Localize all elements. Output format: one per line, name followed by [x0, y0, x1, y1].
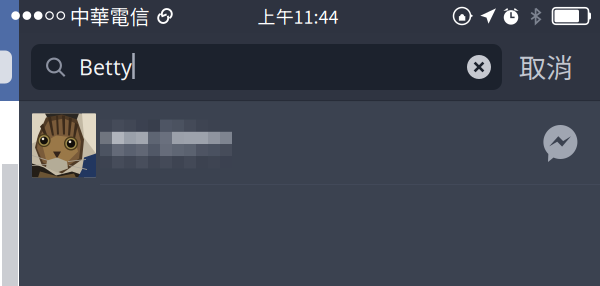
staticText: 上午11:44 — [257, 3, 338, 29]
button[interactable]: 取消 — [508, 43, 584, 89]
button[interactable]: Betty — [31, 44, 502, 90]
staticText: 中華電信 — [69, 1, 149, 30]
button[interactable] — [19, 101, 600, 185]
staticText: Betty — [79, 53, 132, 81]
staticText: 取消 — [519, 46, 573, 86]
